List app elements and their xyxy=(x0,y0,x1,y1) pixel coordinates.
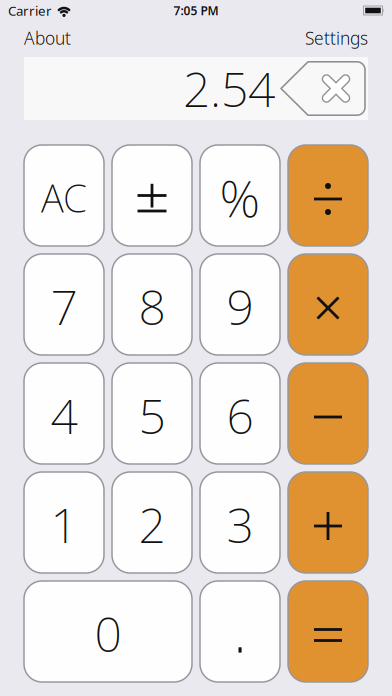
staticText: 4 xyxy=(50,384,77,447)
staticText: 6 xyxy=(226,384,253,447)
button[interactable]: Settings xyxy=(305,26,368,49)
button[interactable]: About xyxy=(24,26,71,49)
staticText: % xyxy=(219,164,260,231)
button[interactable]: Decimal point xyxy=(200,581,280,682)
button[interactable]: 4 xyxy=(24,363,104,464)
button[interactable]: AC xyxy=(24,145,104,246)
button[interactable]: Divide xyxy=(288,145,368,246)
button[interactable]: Subtract xyxy=(288,363,368,464)
button[interactable]: 0 xyxy=(24,581,192,682)
button[interactable]: Multiply xyxy=(288,254,368,355)
staticText: 1 xyxy=(50,493,77,556)
button[interactable]: 3 xyxy=(200,472,280,573)
button[interactable]: Equals xyxy=(288,581,368,682)
staticText: 7 xyxy=(50,275,77,338)
staticText: Carrier xyxy=(8,2,52,19)
button[interactable]: Delete xyxy=(281,61,365,116)
staticText: Settings xyxy=(305,26,368,49)
button[interactable]: 7 xyxy=(24,254,104,355)
button[interactable]: 5 xyxy=(112,363,192,464)
staticText: 3 xyxy=(226,493,253,556)
staticText: 0 xyxy=(94,602,121,665)
button[interactable]: Percent xyxy=(200,145,280,246)
button[interactable]: Plus minus xyxy=(112,145,192,246)
staticText: 9 xyxy=(226,275,253,338)
staticText: 8 xyxy=(138,275,165,338)
button[interactable]: 1 xyxy=(24,472,104,573)
button[interactable]: 6 xyxy=(200,363,280,464)
button[interactable]: 8 xyxy=(112,254,192,355)
staticText: AC xyxy=(41,172,87,223)
staticText: 2.54 xyxy=(183,57,275,120)
staticText: 2 xyxy=(138,493,165,556)
button[interactable]: 9 xyxy=(200,254,280,355)
staticText: 5 xyxy=(138,384,165,447)
staticText: About xyxy=(24,26,71,49)
button[interactable]: Add xyxy=(288,472,368,573)
button[interactable]: 2 xyxy=(112,472,192,573)
staticText: 7:05 PM xyxy=(173,2,218,18)
